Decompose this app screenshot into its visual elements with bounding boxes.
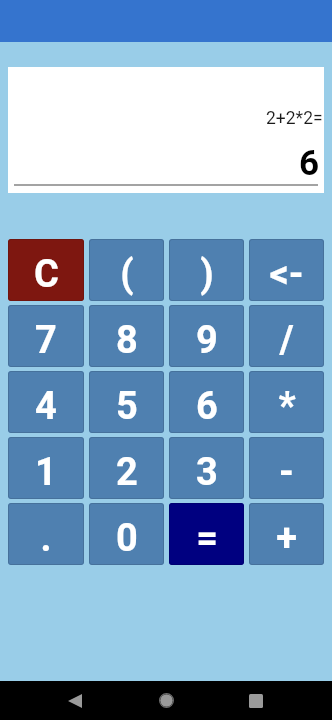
staticText: 4 (35, 384, 57, 429)
staticText: 5 (116, 384, 138, 429)
button[interactable]: 2 (89, 437, 164, 499)
button[interactable]: 3 (169, 437, 244, 499)
staticText: 0 (116, 516, 138, 561)
button[interactable]: <- (249, 239, 324, 301)
staticText: 3 (196, 450, 218, 495)
button[interactable]: - (249, 437, 324, 499)
button[interactable]: ) (169, 239, 244, 301)
staticText: / (279, 318, 294, 363)
button[interactable]: + (249, 503, 324, 565)
staticText: 9 (196, 318, 218, 363)
button[interactable]: Back (47, 681, 103, 720)
button[interactable]: 0 (89, 503, 164, 565)
staticText: 6 (299, 143, 320, 184)
staticText: 2 (116, 450, 138, 495)
staticText: 8 (116, 318, 138, 363)
button[interactable]: 8 (89, 305, 164, 367)
button[interactable]: C (8, 239, 84, 301)
button[interactable]: Home (138, 681, 194, 720)
staticText: C (34, 252, 59, 297)
staticText: 1 (35, 450, 57, 495)
button[interactable]: 4 (8, 371, 84, 433)
staticText: ( (120, 252, 134, 297)
button[interactable]: 6 (169, 371, 244, 433)
staticText: * (278, 384, 296, 429)
staticText: 7 (35, 318, 57, 363)
staticText: ) (200, 252, 214, 297)
button[interactable]: 9 (169, 305, 244, 367)
button[interactable]: 5 (89, 371, 164, 433)
button[interactable]: Recent apps (228, 681, 284, 720)
staticText: - (279, 450, 294, 495)
staticText: 6 (196, 384, 218, 429)
button[interactable]: = (169, 503, 244, 565)
staticText: + (276, 516, 297, 561)
staticText: 2+2*2= (266, 108, 323, 129)
staticText: . (40, 516, 52, 561)
button[interactable]: / (249, 305, 324, 367)
button[interactable]: * (249, 371, 324, 433)
staticText: = (196, 516, 218, 561)
staticText: <- (269, 252, 304, 297)
button[interactable]: ( (89, 239, 164, 301)
button[interactable]: 7 (8, 305, 84, 367)
button[interactable]: 1 (8, 437, 84, 499)
button[interactable]: . (8, 503, 84, 565)
